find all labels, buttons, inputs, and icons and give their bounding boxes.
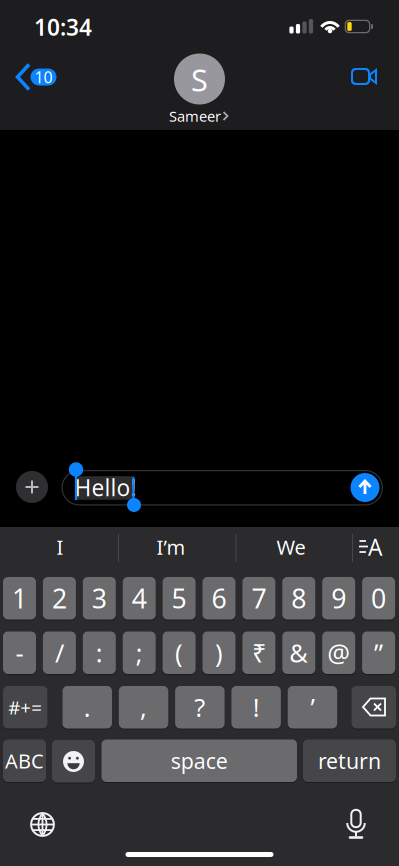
button[interactable] [0,0,399,866]
staticText: 10 [34,66,52,88]
staticText: 9 [331,580,346,616]
staticText: ” [374,636,383,669]
staticText: 1 [12,580,27,616]
button[interactable]: Hello! [0,0,399,866]
button[interactable]: We [0,0,399,866]
button[interactable]: @ [0,0,399,866]
button[interactable]: ( [0,0,399,866]
staticText: 0 [371,580,386,616]
staticText: ) [215,636,223,669]
button[interactable]: & [0,0,399,866]
button[interactable] [0,0,399,866]
button[interactable]: ? [0,0,399,866]
button[interactable]: ) [0,0,399,866]
button[interactable]: #+= [0,0,399,866]
button[interactable]: ! [0,0,399,866]
staticText: & [289,636,308,669]
button[interactable] [0,0,399,866]
staticText: #+= [8,695,42,720]
staticText: @ [327,636,350,669]
staticText: We [276,534,305,560]
staticText: ! [253,690,260,724]
button[interactable]: ABC [0,0,399,866]
staticText: : [96,636,103,669]
button[interactable]: return [0,0,399,866]
button[interactable]: space [0,0,399,866]
staticText: - [15,636,23,669]
staticText: I [56,534,63,560]
staticText: , [140,690,147,724]
button[interactable] [0,0,399,866]
button[interactable]: , [0,0,399,866]
button[interactable]: 9 [0,0,399,866]
button[interactable]: 7 [0,0,399,866]
staticText: ? [194,690,205,724]
button[interactable]: - [0,0,399,866]
button[interactable]: ’ [0,0,399,866]
button[interactable]: 8 [0,0,399,866]
button[interactable]: S [0,0,399,866]
button[interactable]: 2 [0,0,399,866]
staticText: 2 [52,580,67,616]
button[interactable]: 0 [0,0,399,866]
staticText: ( [175,636,183,669]
staticText: 6 [211,580,226,616]
button[interactable]: I’m [0,0,399,866]
staticText: ₹ [252,636,266,669]
button[interactable] [0,0,399,866]
staticText: 10:34 [34,12,92,42]
staticText: Sameer [169,106,221,126]
staticText: . [84,690,91,724]
button[interactable]: 6 [0,0,399,866]
staticText: 5 [172,580,187,616]
staticText: / [55,636,64,669]
staticText: return [318,747,381,775]
staticText: 8 [291,580,306,616]
button[interactable]: 10 [0,0,399,866]
button[interactable]: 4 [0,0,399,866]
button[interactable]: 3 [0,0,399,866]
staticText: 7 [251,580,266,616]
button[interactable]: ₹ [0,0,399,866]
button[interactable]: ” [0,0,399,866]
button[interactable]: 1 [0,0,399,866]
staticText: ; [136,636,143,669]
staticText: space [171,747,228,775]
button[interactable] [0,0,399,866]
staticText: Hello! [74,472,136,502]
staticText: S [191,59,208,100]
staticText: 4 [132,580,147,616]
staticText: A [368,532,382,562]
staticText: I’m [156,534,185,560]
staticText: 3 [92,580,107,616]
button[interactable]: / [0,0,399,866]
button[interactable]: : [0,0,399,866]
button[interactable]: ; [0,0,399,866]
button[interactable]: A [0,0,399,866]
button[interactable]: I [0,0,399,866]
staticText: ’ [310,690,314,724]
staticText: ABC [5,747,44,774]
button[interactable]: 5 [0,0,399,866]
button[interactable]: . [0,0,399,866]
